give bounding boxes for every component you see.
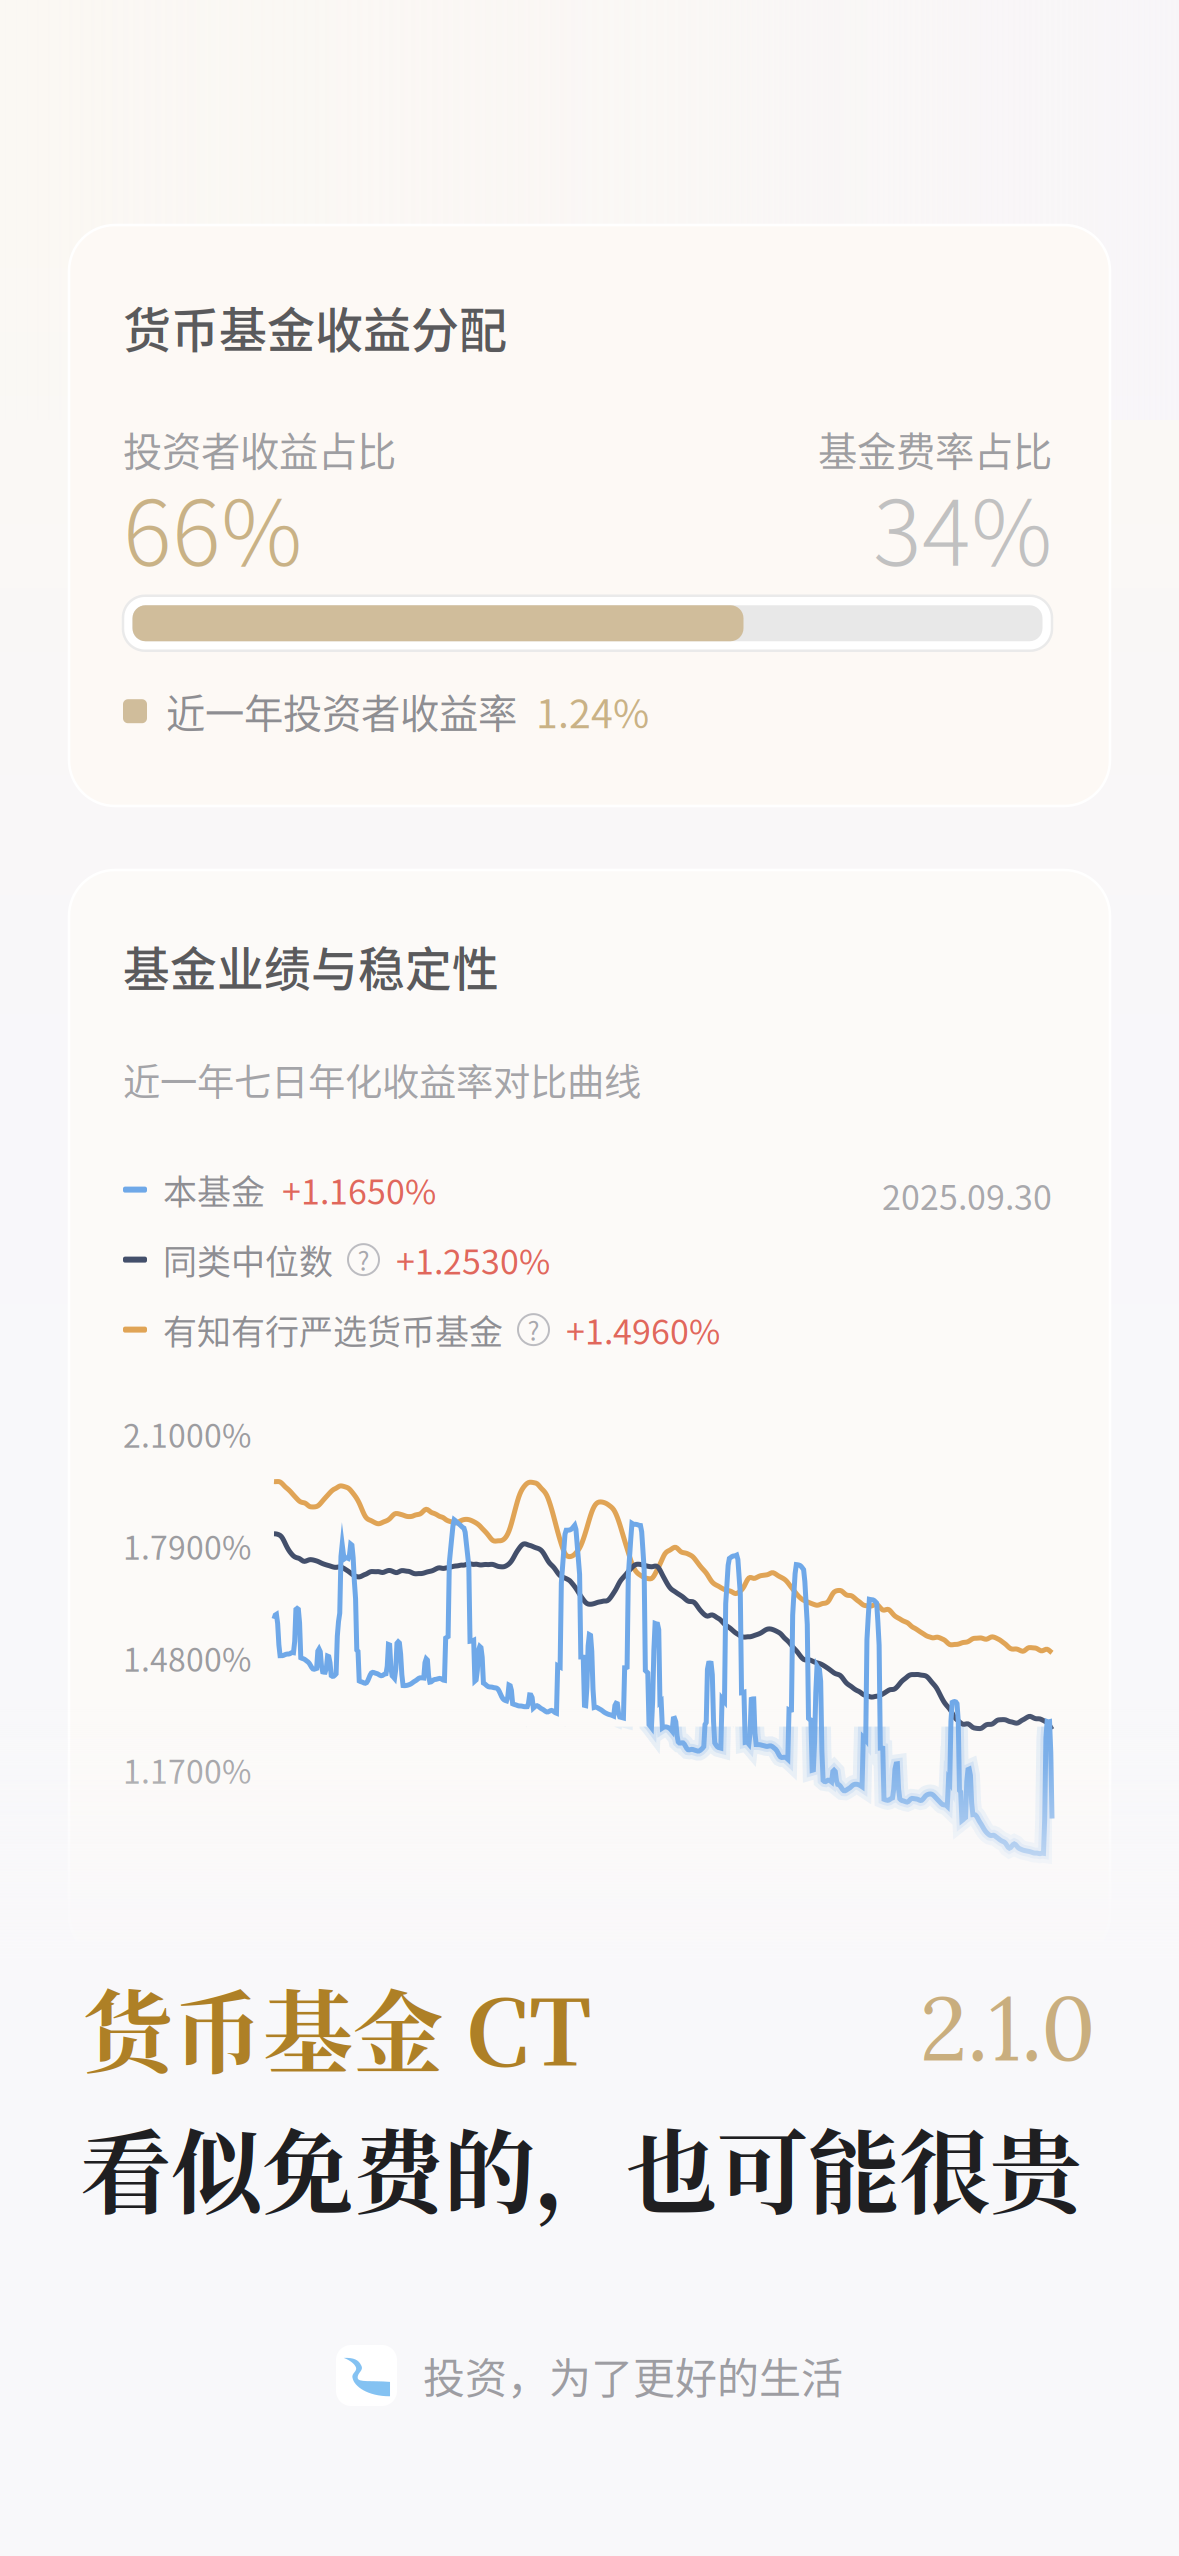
staticText: 1.7900% (123, 1523, 251, 1569)
staticText: 1.24% (536, 683, 649, 740)
staticText: 1.4800% (123, 1635, 251, 1681)
staticText: 同类中位数 (163, 1235, 333, 1284)
staticText: 看似免费的，也可能很贵 (80, 2101, 1081, 2232)
staticText: ? (527, 1311, 539, 1348)
staticText: 投资者收益占比 (123, 420, 396, 477)
staticText: 本基金 (163, 1165, 265, 1214)
staticText: +1.2530% (396, 1235, 550, 1284)
staticText: 1.1700% (123, 1747, 251, 1793)
staticText: 66% (123, 460, 302, 592)
staticText: 34% (873, 460, 1052, 592)
staticText: 基金费率占比 (818, 420, 1052, 477)
staticText: 基金业绩与稳定性 (123, 932, 499, 1000)
staticText: 货币基金 CT (83, 1962, 592, 2091)
staticText: 有知有行严选货币基金 (163, 1305, 503, 1354)
staticText: ? (357, 1241, 369, 1278)
staticText: 货币基金收益分配 (123, 292, 507, 361)
staticText: 近一年投资者收益率 (166, 683, 517, 740)
staticText: 2025.09.30 (882, 1171, 1052, 1220)
staticText: +1.1650% (282, 1165, 436, 1214)
staticText: 2.1.0 (920, 1972, 1096, 2085)
staticText: 近一年七日年化收益率对比曲线 (123, 1053, 641, 1107)
staticText: 投资，为了更好的生活 (423, 2345, 843, 2406)
staticText: +1.4960% (566, 1305, 720, 1354)
staticText: 2.1000% (123, 1411, 251, 1457)
